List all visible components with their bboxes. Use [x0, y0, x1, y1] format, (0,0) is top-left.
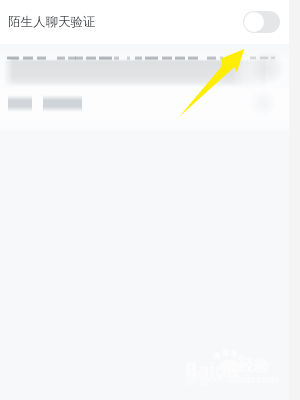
staticText: 陌生人聊天验证: [8, 14, 96, 30]
button[interactable]: Toggle stranger chat verification: [243, 11, 280, 33]
